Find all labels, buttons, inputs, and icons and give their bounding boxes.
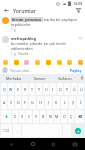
- staticText: C: [28, 114, 31, 119]
- staticText: N: [49, 114, 52, 119]
- staticText: 14:08: [73, 1, 83, 6]
- staticText: Paylaş: [70, 68, 82, 73]
- staticText: mefruşatblog: [11, 36, 36, 41]
- button[interactable]: X: [19, 110, 25, 123]
- staticText: H: [39, 100, 42, 105]
- button[interactable]: V: [33, 110, 39, 123]
- button[interactable]: K: [53, 96, 60, 109]
- button[interactable]: Merhaba: [0, 74, 26, 82]
- button[interactable]: Emoji: [34, 59, 40, 65]
- staticText: G: [31, 100, 34, 105]
- staticText: Yorumlar: [13, 7, 36, 14]
- button[interactable]: Ğ: [71, 83, 77, 95]
- button[interactable]: ?123: [1, 124, 12, 137]
- button[interactable]: F: [22, 96, 28, 109]
- staticText: F: [24, 100, 26, 105]
- staticText: A: [3, 100, 6, 105]
- button[interactable]: Hide keyboard: [0, 138, 22, 150]
- staticText: J: [48, 100, 49, 105]
- button[interactable]: Ü: [78, 83, 84, 95]
- staticText: edilenlerden: [11, 46, 33, 51]
- staticText: X: [21, 114, 24, 119]
- button[interactable]: Z: [12, 110, 18, 123]
- button[interactable]: E: [15, 83, 21, 95]
- button[interactable]: J: [45, 96, 52, 109]
- staticText: O: [59, 87, 62, 92]
- button[interactable]: L: [61, 96, 68, 109]
- button[interactable]: Y: [36, 83, 42, 95]
- staticText: Yanıtla: [18, 52, 29, 56]
- button[interactable]: Ç: [68, 110, 74, 123]
- button[interactable]: A: [1, 96, 7, 109]
- staticText: W: [9, 87, 13, 92]
- staticText: Z: [14, 114, 17, 119]
- button[interactable]: B: [40, 110, 46, 123]
- staticText: B: [42, 114, 45, 119]
- button[interactable]: S: [8, 96, 14, 109]
- staticText: I: [52, 87, 54, 92]
- button[interactable]: W: [8, 83, 14, 95]
- staticText: Ü: [80, 87, 83, 92]
- button[interactable]: Key: [1, 110, 11, 123]
- staticText: Merhaba: [6, 76, 21, 81]
- button[interactable]: Voice input: [78, 74, 85, 82]
- button[interactable]: D: [15, 96, 21, 109]
- button[interactable]: Ş: [69, 96, 76, 109]
- button[interactable]: Ö: [61, 110, 67, 123]
- button[interactable]: U: [43, 83, 49, 95]
- button[interactable]: Filter: [75, 7, 82, 14]
- staticText: Ğ: [73, 87, 76, 92]
- button[interactable]: Emoji: [2, 59, 8, 65]
- button[interactable]: Switch keyboard: [64, 138, 85, 150]
- button[interactable]: Recents: [43, 138, 64, 150]
- button[interactable]: Back: [3, 7, 10, 14]
- staticText: P: [66, 87, 69, 92]
- button[interactable]: Emoji: [77, 59, 83, 65]
- staticText: Ş: [72, 100, 74, 105]
- button[interactable]: Like: [78, 36, 83, 41]
- staticText: L: [64, 100, 66, 105]
- staticText: U: [45, 87, 48, 92]
- staticText: Ç: [70, 114, 73, 119]
- staticText: 1 g: [11, 28, 16, 32]
- button[interactable]: Yorum ekle...: [10, 68, 69, 73]
- button[interactable]: M: [54, 110, 60, 123]
- button[interactable]: Home: [22, 138, 43, 150]
- button[interactable]: Tamam: [26, 74, 52, 82]
- staticText: ?123: [3, 129, 10, 133]
- staticText: İ: [80, 100, 82, 105]
- button[interactable]: R: [22, 83, 28, 95]
- button[interactable]: bircan_yorumcu: [0, 15, 85, 33]
- staticText: R: [24, 87, 27, 92]
- button[interactable]: Emoji: [13, 59, 19, 65]
- staticText: bircan_yorumcu: [12, 17, 42, 22]
- button[interactable]: mefruşatblog: [0, 34, 85, 57]
- button[interactable]: G: [29, 96, 36, 109]
- button[interactable]: Emoji: [56, 59, 62, 65]
- button[interactable]: Emoji: [23, 59, 29, 65]
- button[interactable]: T: [29, 83, 35, 95]
- button[interactable]: Emoji: [45, 59, 51, 65]
- button[interactable]: Kullanıcı: [52, 74, 78, 82]
- button[interactable]: O: [57, 83, 63, 95]
- button[interactable]: Key: [75, 110, 84, 123]
- button[interactable]: İ: [77, 96, 84, 109]
- button[interactable]: ,: [13, 124, 21, 137]
- button[interactable]: Send: [75, 128, 81, 134]
- button[interactable]: H: [37, 96, 44, 109]
- button[interactable]: P: [64, 83, 70, 95]
- button[interactable]: N: [47, 110, 53, 123]
- staticText: Tamam: [33, 76, 46, 81]
- button[interactable]: Yanıtla: [18, 52, 29, 56]
- staticText: teşekkürler: [11, 22, 31, 27]
- staticText: M: [55, 114, 59, 119]
- staticText: Kullanıcı: [58, 76, 72, 81]
- button[interactable]: Q: [1, 83, 7, 95]
- button[interactable]: I: [50, 83, 56, 95]
- staticText: Ö: [63, 114, 66, 119]
- button[interactable]: Emoji: [66, 59, 72, 65]
- button[interactable]: Paylaş: [69, 68, 83, 73]
- button[interactable]: C: [26, 110, 32, 123]
